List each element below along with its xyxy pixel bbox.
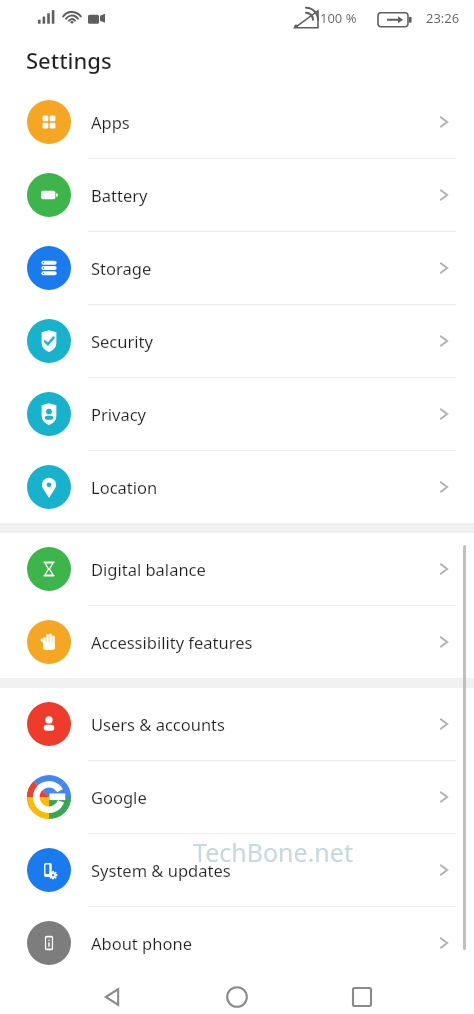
- button[interactable]: Google: [0, 761, 474, 834]
- button[interactable]: System & updates: [0, 834, 474, 907]
- staticText: Privacy: [91, 403, 147, 425]
- staticText: Storage: [91, 257, 152, 279]
- staticText: Apps: [91, 111, 130, 133]
- button[interactable]: Back: [88, 979, 136, 1014]
- staticText: Accessibility features: [91, 631, 253, 653]
- staticText: Location: [91, 476, 158, 498]
- staticText: Security: [91, 330, 153, 352]
- staticText: TechBone.net: [193, 835, 353, 869]
- button[interactable]: Battery: [0, 159, 474, 232]
- button[interactable]: Digital balance: [0, 533, 474, 606]
- button[interactable]: Users & accounts: [0, 688, 474, 761]
- button[interactable]: Privacy: [0, 378, 474, 451]
- staticText: Battery: [91, 184, 148, 206]
- staticText: About phone: [91, 932, 192, 954]
- staticText: 100 %: [320, 9, 357, 27]
- button[interactable]: Location: [0, 451, 474, 523]
- button[interactable]: Security: [0, 305, 474, 378]
- staticText: Digital balance: [91, 558, 206, 580]
- staticText: Google: [91, 786, 147, 808]
- button[interactable]: Apps: [0, 86, 474, 159]
- staticText: 23:26: [426, 9, 460, 27]
- staticText: System & updates: [91, 859, 231, 881]
- button[interactable]: Accessibility features: [0, 606, 474, 678]
- button[interactable]: Home: [213, 979, 261, 1014]
- button[interactable]: Storage: [0, 232, 474, 305]
- staticText: Settings: [26, 45, 112, 75]
- button[interactable]: About phone: [0, 907, 474, 979]
- staticText: Users & accounts: [91, 713, 225, 735]
- button[interactable]: Recent apps: [338, 979, 386, 1014]
